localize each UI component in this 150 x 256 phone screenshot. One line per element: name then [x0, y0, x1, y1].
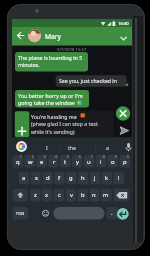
staticText: 3	[44, 155, 46, 159]
staticText: p	[123, 158, 127, 166]
staticText: 16:00	[118, 21, 129, 27]
staticText: the	[68, 144, 77, 151]
staticText: 2	[32, 155, 34, 159]
staticText: Mary	[45, 32, 61, 41]
staticText: g	[69, 174, 73, 182]
staticText: a	[106, 144, 109, 151]
staticText: b	[81, 191, 85, 199]
staticText: x	[45, 191, 49, 199]
staticText: t	[64, 158, 67, 166]
staticText: You're hassling me	[31, 113, 77, 120]
staticText: e	[40, 158, 44, 166]
staticText: s	[35, 174, 38, 182]
staticText: 5	[67, 155, 69, 159]
staticText: 0	[127, 155, 129, 159]
staticText: w	[28, 158, 33, 166]
staticText: y	[76, 158, 79, 166]
staticText: minutes.	[18, 61, 40, 68]
staticText: h	[81, 174, 85, 182]
staticText: going take the window	[18, 99, 75, 106]
staticText: k	[105, 174, 109, 182]
staticText: m	[103, 191, 109, 199]
staticText: f	[58, 174, 60, 182]
staticText: i	[100, 158, 102, 166]
staticText: 6	[79, 155, 81, 159]
staticText: a	[22, 174, 26, 182]
staticText: 4	[55, 155, 57, 159]
staticText: z	[34, 191, 37, 199]
staticText: j	[94, 174, 96, 182]
staticText: r	[53, 158, 56, 166]
staticText: q	[16, 158, 20, 166]
staticText: 1	[20, 155, 22, 159]
staticText: while it's sending)	[31, 128, 75, 135]
staticText: 9/7/2018 15:57	[57, 47, 87, 53]
staticText: d	[46, 174, 50, 182]
staticText: l	[118, 174, 120, 182]
staticText: v	[70, 191, 73, 199]
staticText: The plane is boarding in 5	[18, 54, 83, 61]
staticText: (phew glad I can stop a text	[31, 120, 98, 127]
staticText: 8	[103, 155, 105, 159]
staticText: I	[46, 144, 48, 151]
staticText: c	[58, 191, 61, 199]
staticText: You better hurry up or I'm	[18, 92, 83, 99]
staticText: n	[92, 191, 96, 199]
staticText: u	[87, 158, 91, 166]
staticText: o	[111, 158, 115, 166]
staticText: 9	[115, 155, 117, 159]
staticText: ?123	[16, 211, 25, 216]
staticText: .	[111, 209, 113, 217]
staticText: See you, just checked in	[59, 77, 117, 84]
staticText: 7	[91, 155, 93, 159]
